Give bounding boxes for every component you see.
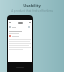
staticText: A product that feels effortless	[0, 9, 64, 13]
staticText: Usability	[0, 3, 64, 8]
